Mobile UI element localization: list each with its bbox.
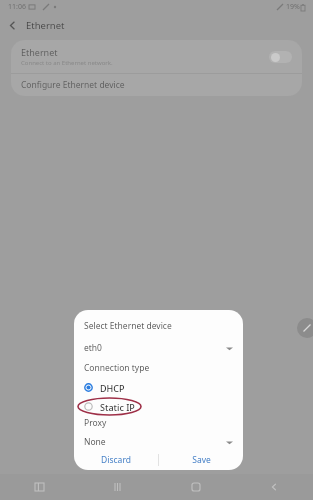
button[interactable]: None xyxy=(74,434,243,450)
staticText: DHCP xyxy=(100,382,125,394)
staticText: Proxy xyxy=(84,417,107,429)
button[interactable]: Ethernet xyxy=(11,40,302,73)
staticText: 19% xyxy=(286,2,300,12)
button[interactable]: eth0 xyxy=(74,340,243,356)
staticText: 11:06 xyxy=(8,2,26,12)
staticText: eth0 xyxy=(84,342,102,354)
staticText: Ethernet xyxy=(26,19,65,32)
staticText: Ethernet xyxy=(21,46,58,58)
button[interactable]: Ethernet toggle xyxy=(269,51,292,63)
button[interactable]: Back xyxy=(0,14,24,36)
button[interactable]: DHCP xyxy=(74,379,243,396)
button[interactable]: Discard xyxy=(74,450,158,470)
button[interactable]: Edge panel handle xyxy=(297,318,313,338)
button[interactable]: Static IP xyxy=(74,398,243,415)
staticText: Configure Ethernet device xyxy=(21,79,125,91)
button[interactable]: Configure Ethernet device xyxy=(11,74,302,96)
button[interactable]: Sidebar xyxy=(0,474,79,500)
staticText: Connection type xyxy=(84,362,150,374)
button[interactable]: Home xyxy=(157,474,235,500)
staticText: Select Ethernet device xyxy=(84,320,172,332)
button[interactable]: Recents xyxy=(79,474,157,500)
staticText: Discard xyxy=(101,454,131,466)
button[interactable]: Save xyxy=(159,450,243,470)
staticText: None xyxy=(84,436,106,448)
staticText: Static IP xyxy=(100,401,135,413)
staticText: Connect to an Ethernet network. xyxy=(21,59,113,67)
staticText: Save xyxy=(192,454,211,466)
